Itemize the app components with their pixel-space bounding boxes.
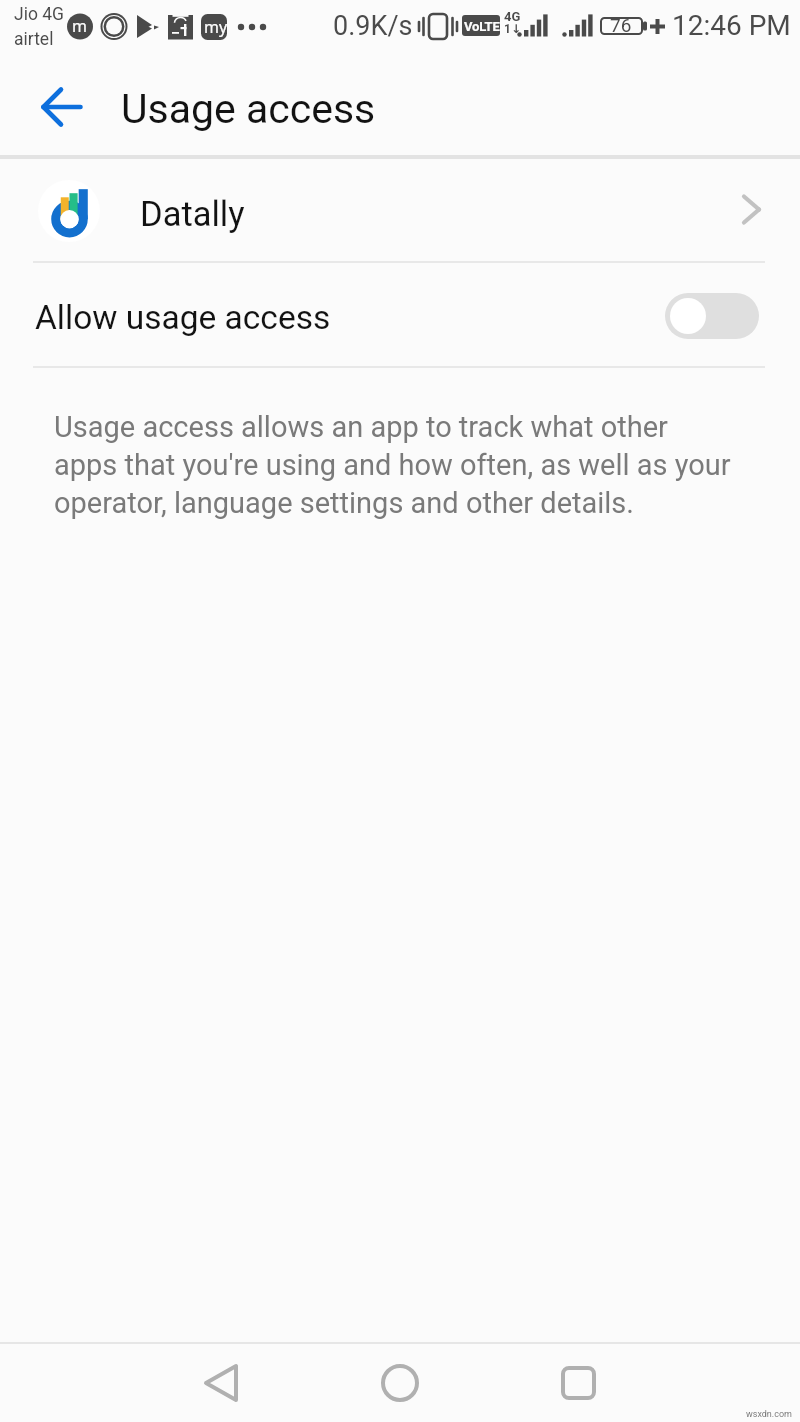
- staticText: 76: [610, 14, 632, 36]
- staticText: 4G: [504, 9, 521, 24]
- staticText: 12:46 PM: [672, 9, 791, 42]
- button[interactable]: Recents: [518, 1344, 638, 1422]
- staticText: Usage access: [121, 85, 376, 133]
- staticText: my: [204, 16, 228, 38]
- staticText: airtel: [14, 29, 54, 50]
- staticText: VoLTE: [464, 19, 500, 34]
- button[interactable]: Home: [340, 1344, 460, 1422]
- button[interactable]: Allow usage access toggle, off: [665, 293, 759, 339]
- staticText: m: [72, 15, 87, 37]
- staticText: 1↓: [504, 22, 521, 36]
- staticText: wsxdn.com: [746, 1409, 792, 1420]
- button[interactable]: Back: [161, 1344, 281, 1422]
- staticText: Jio 4G: [14, 4, 64, 25]
- staticText: Usage access allows an app to track what…: [54, 410, 736, 520]
- button[interactable]: Allow usage access: [0, 263, 800, 366]
- staticText: Datally: [140, 194, 245, 234]
- button[interactable]: Back: [20, 74, 84, 138]
- staticText: 0.9K/s: [333, 10, 413, 42]
- staticText: Allow usage access: [35, 298, 331, 337]
- button[interactable]: Datally: [0, 161, 800, 261]
